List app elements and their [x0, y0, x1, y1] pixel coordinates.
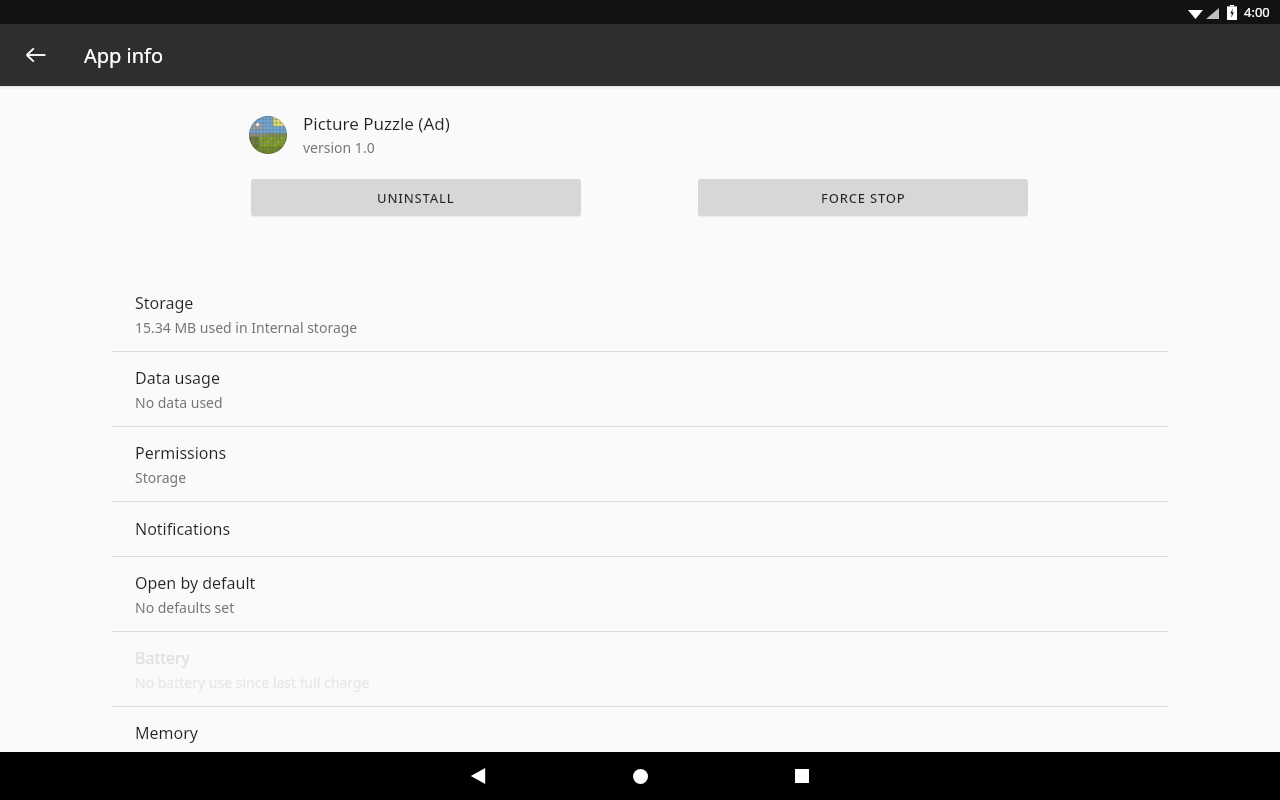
- staticText: version 1.0: [303, 138, 375, 157]
- staticText: FORCE STOP: [821, 189, 906, 207]
- button[interactable]: Permissions: [0, 427, 1280, 501]
- button[interactable]: Notifications: [0, 502, 1280, 556]
- staticText: 15.34 MB used in Internal storage: [135, 318, 358, 337]
- staticText: Memory: [135, 722, 198, 744]
- staticText: Data usage: [135, 367, 220, 389]
- staticText: Storage: [135, 292, 194, 314]
- staticText: 4:00: [1244, 3, 1270, 21]
- staticText: UNINSTALL: [377, 189, 455, 207]
- button[interactable]: Back: [454, 752, 502, 800]
- staticText: Battery: [135, 647, 190, 669]
- button[interactable]: Memory: [0, 707, 1280, 781]
- staticText: App info: [84, 42, 164, 69]
- button[interactable]: Data usage: [0, 352, 1280, 426]
- button[interactable]: Back: [12, 31, 60, 79]
- staticText: No battery use since last full charge: [135, 673, 370, 692]
- button[interactable]: Home: [616, 752, 664, 800]
- staticText: No defaults set: [135, 598, 235, 617]
- staticText: Open by default: [135, 572, 256, 594]
- staticText: Permissions: [135, 442, 227, 464]
- staticText: No data used: [135, 393, 223, 412]
- staticText: Picture Puzzle (Ad): [303, 112, 450, 135]
- staticText: 10.8 MB avg memory used in last 3 hours: [135, 748, 407, 767]
- button[interactable]: UNINSTALL: [251, 179, 581, 216]
- button[interactable]: Open by default: [0, 557, 1280, 631]
- staticText: Storage: [135, 468, 187, 487]
- button[interactable]: Recent apps: [778, 752, 826, 800]
- button[interactable]: FORCE STOP: [698, 179, 1028, 216]
- button[interactable]: Storage: [0, 277, 1280, 351]
- staticText: Notifications: [135, 518, 231, 540]
